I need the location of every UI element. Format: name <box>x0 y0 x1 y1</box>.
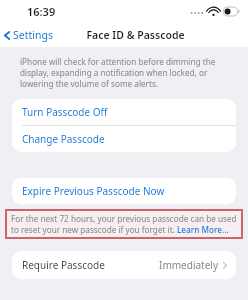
staticText: Expire Previous Passcode Now <box>22 184 165 198</box>
other: Back <box>4 31 10 40</box>
button[interactable]: Back <box>0 26 59 44</box>
staticText: Settings <box>13 28 53 42</box>
staticText: For the next 72 hours, your previous pas… <box>11 213 237 235</box>
staticText: 16:39 <box>27 4 56 19</box>
button[interactable]: Change Passcode <box>12 126 236 152</box>
staticText: Immediately <box>159 258 218 272</box>
staticText: Turn Passcode Off <box>22 105 108 119</box>
staticText: Change Passcode <box>22 132 105 146</box>
button[interactable]: Expire Previous Passcode Now <box>12 178 236 204</box>
button[interactable]: Turn Passcode Off <box>12 99 236 125</box>
staticText: Require Passcode <box>22 258 105 272</box>
button[interactable]: Require Passcode <box>12 251 236 279</box>
staticText: iPhone will check for attention before d… <box>20 56 232 89</box>
staticText: Face ID & Passcode <box>86 28 185 42</box>
